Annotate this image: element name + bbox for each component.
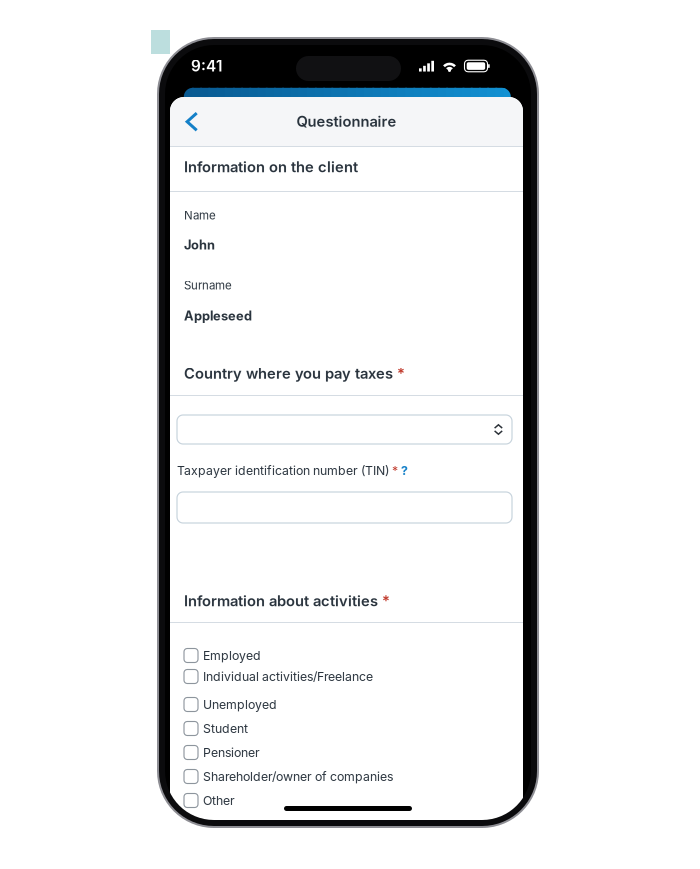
button[interactable]: Shareholder/owner of companies <box>184 768 514 785</box>
staticText: * <box>378 592 390 610</box>
button[interactable]: Other <box>184 792 514 809</box>
staticText: Information on the client <box>184 158 358 176</box>
button[interactable]: Unemployed <box>184 696 514 713</box>
staticText: * <box>389 463 398 478</box>
staticText: * <box>393 364 405 382</box>
staticText: Questionnaire <box>296 113 396 130</box>
staticText: Employed <box>203 648 261 663</box>
staticText: Name <box>184 208 216 222</box>
staticText: Student <box>203 721 248 736</box>
button[interactable]: Student <box>184 720 514 737</box>
button[interactable]: Select country <box>177 415 512 444</box>
button[interactable]: Individual activities/Freelance <box>184 668 514 685</box>
staticText: Surname <box>184 278 232 292</box>
button[interactable]: Pensioner <box>184 744 514 761</box>
button[interactable]: Employed <box>184 647 514 664</box>
staticText: 9:41 <box>191 57 222 75</box>
staticText: Information about activities <box>184 592 378 610</box>
staticText: Shareholder/owner of companies <box>203 769 393 784</box>
staticText: Individual activities/Freelance <box>203 669 373 684</box>
staticText: Unemployed <box>203 697 277 712</box>
staticText: Country where you pay taxes <box>184 364 393 382</box>
staticText: Other <box>203 793 235 808</box>
staticText: ? <box>398 463 408 478</box>
staticText: Pensioner <box>203 745 260 760</box>
staticText: Taxpayer identification number (TIN) <box>177 463 389 478</box>
button[interactable]: Back <box>177 97 207 146</box>
staticText: John <box>184 237 215 252</box>
staticText: Appleseed <box>184 308 252 323</box>
